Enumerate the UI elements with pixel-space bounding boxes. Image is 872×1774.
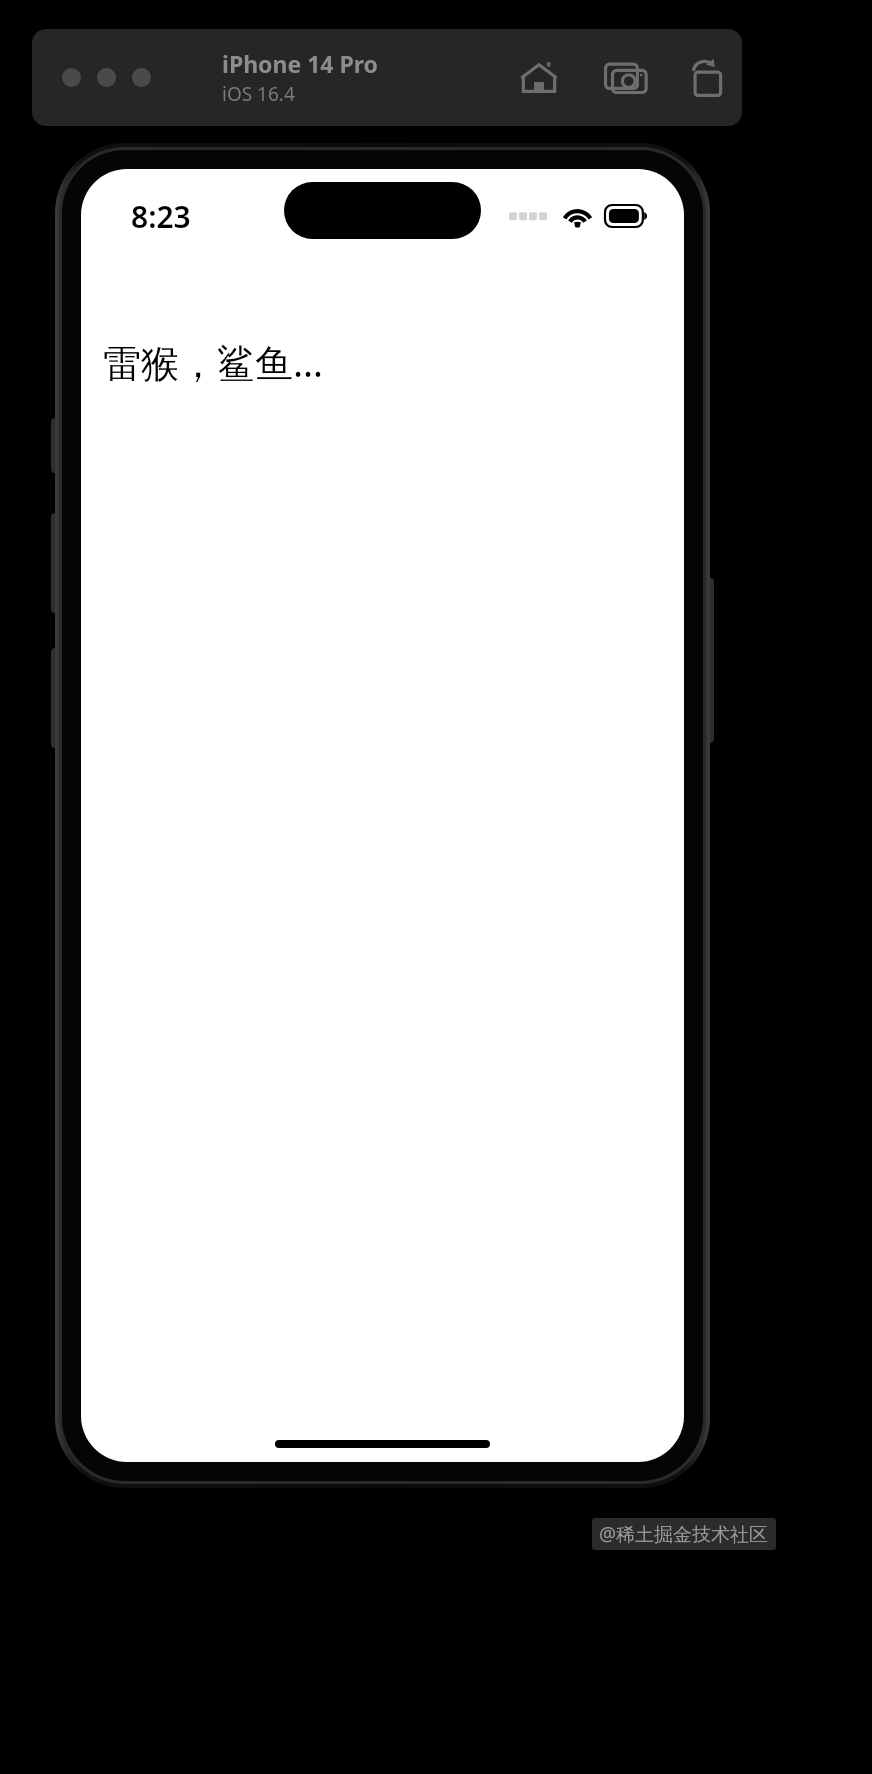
button[interactable]: [97, 68, 116, 87]
button[interactable]: [62, 68, 81, 87]
staticText: @稀土掘金技术社区: [599, 1521, 769, 1547]
staticText: 雷猴，鲨鱼…: [103, 336, 324, 388]
button[interactable]: Rotate: [680, 49, 738, 107]
button[interactable]: Screenshot: [598, 49, 656, 107]
button[interactable]: Home: [510, 49, 568, 107]
button[interactable]: [132, 68, 151, 87]
staticText: iOS 16.4: [222, 81, 295, 107]
staticText: iPhone 14 Pro: [222, 48, 378, 79]
staticText: 8:23: [131, 196, 191, 237]
